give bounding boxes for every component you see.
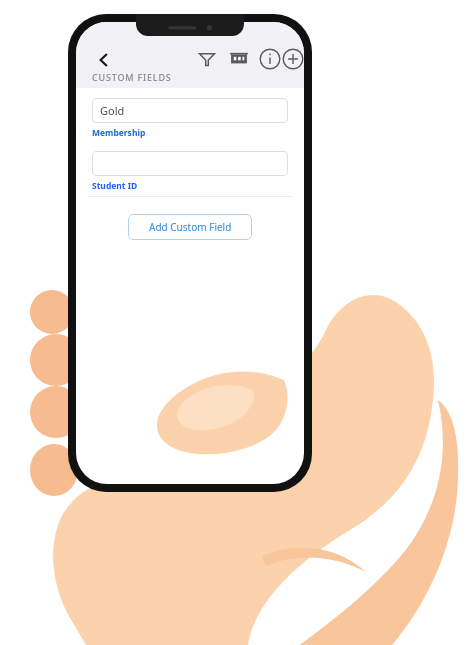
- button[interactable]: [92, 151, 288, 176]
- button[interactable]: Filter: [196, 48, 218, 70]
- button[interactable]: Store: [228, 48, 250, 70]
- button[interactable]: Back: [92, 48, 116, 72]
- staticText: Membership: [92, 127, 146, 139]
- button[interactable]: Info: [259, 48, 281, 70]
- button[interactable]: Add: [282, 48, 304, 70]
- staticText: CUSTOM FIELDS: [92, 71, 172, 83]
- staticText: Add Custom Field: [149, 220, 232, 234]
- button[interactable]: Gold: [92, 98, 288, 123]
- staticText: Gold: [100, 103, 125, 118]
- staticText: Student ID: [92, 180, 138, 192]
- button[interactable]: Add Custom Field: [128, 214, 252, 240]
